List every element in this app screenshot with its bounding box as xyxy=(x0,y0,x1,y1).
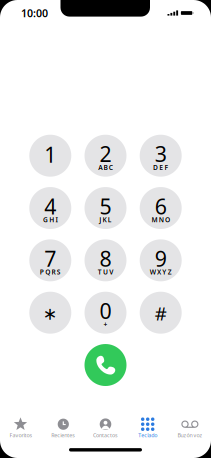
staticText: 9 xyxy=(155,244,167,273)
staticText: MNO xyxy=(151,215,170,224)
staticText: PQRS xyxy=(40,268,61,276)
staticText: Buzón voz xyxy=(177,431,202,439)
staticText: 1 xyxy=(44,140,56,168)
staticText: TUV xyxy=(98,268,113,276)
button[interactable]: Contactos xyxy=(84,417,127,439)
staticText: 2 xyxy=(99,140,111,168)
staticText: 8 xyxy=(99,244,111,273)
button[interactable]: Llamar xyxy=(84,344,126,386)
staticText: GHI xyxy=(43,215,58,224)
button[interactable]: 5 xyxy=(84,187,126,229)
button[interactable]: 0 xyxy=(84,292,126,334)
button[interactable]: Buzón voz xyxy=(169,417,211,439)
button[interactable]: Recientes xyxy=(42,417,84,439)
staticText: 4 xyxy=(44,192,56,220)
staticText: Recientes xyxy=(51,431,75,439)
button[interactable]: # xyxy=(140,292,182,334)
staticText: + xyxy=(103,320,107,329)
staticText: Teclado xyxy=(138,431,157,439)
staticText: 7 xyxy=(44,244,56,273)
button[interactable]: 2 xyxy=(84,135,126,177)
staticText: Favoritos xyxy=(10,431,33,439)
button[interactable]: 6 xyxy=(140,187,182,229)
staticText: # xyxy=(155,301,167,326)
button[interactable]: 1 xyxy=(29,135,71,177)
staticText: ABC xyxy=(98,163,113,172)
button[interactable]: ∗ xyxy=(29,292,71,334)
button[interactable]: Favoritos xyxy=(0,417,42,439)
button[interactable]: Teclado xyxy=(127,417,169,439)
staticText: 5 xyxy=(99,192,111,220)
staticText: ∗ xyxy=(43,304,58,324)
staticText: 3 xyxy=(155,140,167,168)
staticText: WXYZ xyxy=(150,268,172,276)
staticText: 6 xyxy=(155,192,167,220)
button[interactable]: 9 xyxy=(140,239,182,281)
staticText: 0 xyxy=(99,297,111,325)
button[interactable]: 7 xyxy=(29,239,71,281)
staticText: DEF xyxy=(153,163,168,172)
button[interactable]: 3 xyxy=(140,135,182,177)
staticText: JKL xyxy=(99,215,112,224)
staticText: Contactos xyxy=(93,431,118,439)
button[interactable]: 8 xyxy=(84,239,126,281)
button[interactable]: 4 xyxy=(29,187,71,229)
staticText: 10:00 xyxy=(21,6,48,20)
